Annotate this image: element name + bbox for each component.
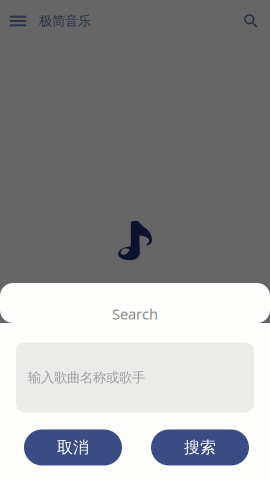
- button[interactable]: 搜索: [151, 429, 249, 465]
- staticText: 极简音乐: [39, 13, 91, 29]
- button[interactable]: 输入歌曲名称或歌手: [16, 342, 254, 412]
- staticText: Search: [112, 304, 158, 323]
- button[interactable]: Menu: [0, 4, 36, 38]
- button[interactable]: 取消: [24, 429, 122, 465]
- staticText: 搜索: [184, 438, 216, 457]
- staticText: 取消: [57, 438, 89, 457]
- staticText: 输入歌曲名称或歌手: [28, 369, 145, 386]
- button[interactable]: Search: [234, 4, 268, 38]
